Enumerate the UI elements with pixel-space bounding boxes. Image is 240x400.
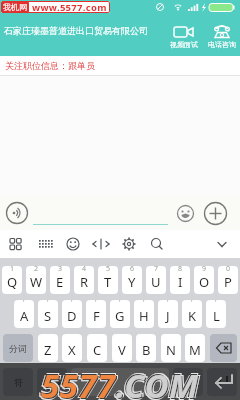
staticText: Z bbox=[44, 341, 52, 359]
button[interactable]: 7 bbox=[146, 266, 166, 294]
button[interactable] bbox=[177, 205, 194, 222]
button[interactable] bbox=[104, 230, 138, 258]
button[interactable]: 1 bbox=[2, 266, 22, 294]
button[interactable]: 9 bbox=[194, 266, 214, 294]
button[interactable]: 我机网 bbox=[1, 1, 110, 13]
button[interactable] bbox=[0, 230, 35, 258]
staticText: 视频面试 bbox=[170, 40, 198, 49]
staticText: .COM bbox=[116, 361, 199, 398]
staticText: L bbox=[213, 307, 220, 325]
staticText: I bbox=[178, 273, 183, 291]
button[interactable]: 2 bbox=[26, 266, 46, 294]
staticText: W bbox=[30, 273, 43, 291]
staticText: C bbox=[93, 341, 102, 359]
staticText: 符 bbox=[14, 377, 23, 388]
staticText: ， bbox=[183, 376, 193, 389]
staticText: ' bbox=[23, 300, 25, 308]
staticText: ' bbox=[71, 300, 73, 308]
staticText: 5577 bbox=[39, 363, 114, 400]
button[interactable] bbox=[71, 368, 169, 396]
button[interactable] bbox=[210, 334, 237, 362]
button[interactable] bbox=[70, 230, 104, 258]
staticText: H bbox=[139, 307, 149, 325]
staticText: 5577 bbox=[41, 363, 116, 400]
staticText: 5 bbox=[106, 266, 111, 274]
button[interactable]: M bbox=[185, 334, 205, 362]
button[interactable]: ' bbox=[134, 300, 154, 328]
staticText: 1 bbox=[10, 266, 15, 274]
button[interactable]: 符 bbox=[3, 368, 33, 396]
staticText: .COM bbox=[114, 363, 197, 400]
staticText: 0 bbox=[226, 266, 231, 274]
staticText: ' bbox=[119, 300, 121, 308]
button[interactable]: ' bbox=[206, 300, 226, 328]
staticText: ' bbox=[215, 300, 217, 308]
staticText: 6 bbox=[130, 266, 135, 274]
button[interactable] bbox=[207, 368, 237, 396]
staticText: R bbox=[80, 273, 89, 291]
button[interactable]: V bbox=[112, 334, 132, 362]
button[interactable]: ' bbox=[158, 300, 178, 328]
staticText: .COM bbox=[116, 365, 199, 400]
staticText: ' bbox=[95, 300, 97, 308]
staticText: 4 bbox=[82, 266, 87, 274]
staticText: .COM bbox=[115, 362, 198, 399]
staticText: .COM bbox=[116, 363, 199, 400]
button[interactable]: C bbox=[87, 334, 107, 362]
staticText: F bbox=[93, 307, 100, 325]
staticText: 石家庄瑧墨普道进出口贸易有限公司 bbox=[4, 25, 148, 36]
staticText: 5577 bbox=[40, 362, 115, 399]
button[interactable]: N bbox=[161, 334, 181, 362]
staticText: 5577 bbox=[41, 361, 116, 398]
button[interactable]: 4 bbox=[74, 266, 94, 294]
button[interactable]: Z bbox=[38, 334, 58, 362]
staticText: A bbox=[20, 307, 29, 325]
button[interactable]: 8 bbox=[170, 266, 190, 294]
staticText: ' bbox=[191, 300, 193, 308]
button[interactable]: 5 bbox=[98, 266, 118, 294]
button[interactable] bbox=[35, 230, 70, 258]
button[interactable]: 分词 bbox=[3, 334, 33, 362]
button[interactable]: 123 bbox=[37, 368, 67, 396]
staticText: M bbox=[189, 341, 201, 359]
button[interactable] bbox=[6, 202, 28, 224]
button[interactable] bbox=[204, 202, 227, 225]
button[interactable]: ' bbox=[182, 300, 202, 328]
button[interactable]: ' bbox=[14, 300, 34, 328]
button[interactable]: B bbox=[136, 334, 156, 362]
staticText: U bbox=[151, 273, 161, 291]
staticText: B bbox=[142, 341, 151, 359]
staticText: .COM bbox=[118, 363, 201, 400]
staticText: 5577 bbox=[41, 365, 116, 400]
staticText: T bbox=[104, 273, 112, 291]
staticText: ' bbox=[167, 300, 169, 308]
button[interactable]: 视频面试 bbox=[170, 24, 198, 49]
staticText: 3 bbox=[58, 266, 63, 274]
staticText: 5577 bbox=[42, 364, 117, 400]
button[interactable]: ' bbox=[86, 300, 106, 328]
button[interactable] bbox=[206, 230, 240, 258]
button[interactable]: 6 bbox=[122, 266, 142, 294]
staticText: P bbox=[224, 273, 232, 291]
staticText: .COM bbox=[117, 364, 200, 400]
staticText: S bbox=[44, 307, 52, 325]
button[interactable]: 关注职位信息：跟单员 bbox=[0, 56, 240, 75]
button[interactable] bbox=[138, 230, 172, 258]
staticText: 9 bbox=[202, 266, 207, 274]
button[interactable]: ' bbox=[38, 300, 58, 328]
button[interactable]: 电话咨询 bbox=[208, 24, 236, 49]
button[interactable]: ' bbox=[62, 300, 82, 328]
button[interactable]: 3 bbox=[50, 266, 70, 294]
staticText: Q bbox=[7, 273, 18, 291]
button[interactable]: ' bbox=[110, 300, 130, 328]
button[interactable]: ， bbox=[173, 368, 203, 396]
button[interactable]: X bbox=[62, 334, 82, 362]
staticText: 关注职位信息：跟单员 bbox=[5, 60, 95, 71]
staticText: www.5577.com bbox=[32, 1, 107, 13]
staticText: J bbox=[166, 307, 170, 325]
staticText: 5577 bbox=[43, 363, 118, 400]
staticText: G bbox=[115, 307, 125, 325]
button[interactable]: 0 bbox=[218, 266, 238, 294]
staticText: E bbox=[56, 273, 64, 291]
